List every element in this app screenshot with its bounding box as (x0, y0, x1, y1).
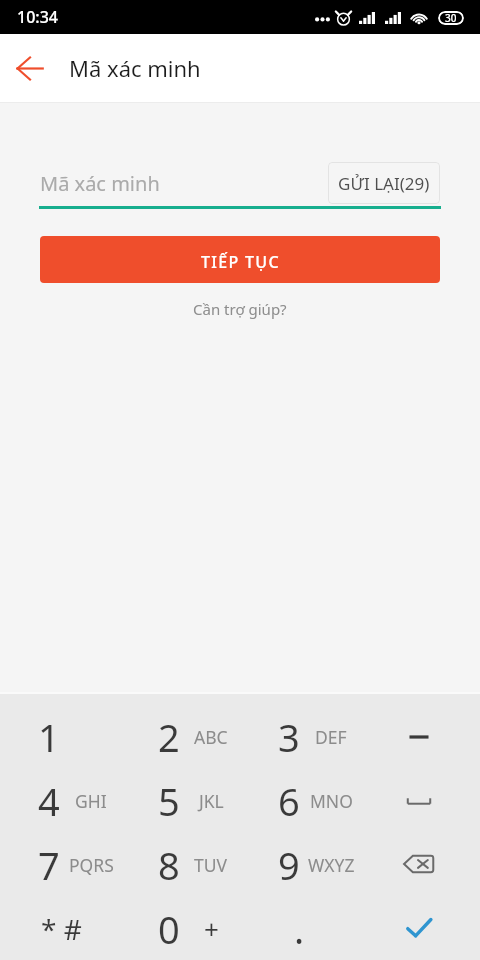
staticText: 3 (278, 711, 300, 763)
staticText: Mã xác minh (69, 53, 201, 83)
staticText: TIẾP TỤC (201, 251, 280, 273)
button[interactable]: 4 (0, 769, 120, 833)
staticText: JKL (199, 789, 224, 813)
staticText: . (294, 903, 305, 955)
staticText: ABC (194, 725, 228, 749)
button[interactable]: Cần trợ giúp? (183, 295, 297, 323)
other: Backspace (393, 839, 445, 891)
button[interactable]: Space (360, 769, 480, 833)
button[interactable]: 6 (240, 769, 360, 833)
staticText: 8 (158, 839, 180, 891)
staticText: 1 (38, 711, 60, 763)
staticText: 5 (158, 775, 180, 827)
staticText: 4 (38, 775, 60, 827)
button[interactable]: 0 (120, 897, 240, 960)
button[interactable]: * # (0, 897, 120, 960)
button[interactable]: 7 (0, 833, 120, 897)
button[interactable]: 1 (0, 705, 120, 769)
button[interactable]: 3 (240, 705, 360, 769)
staticText: MNO (310, 789, 353, 813)
button[interactable]: Minus (360, 705, 480, 769)
staticText: Mã xác minh (40, 170, 160, 197)
button[interactable]: . (240, 897, 360, 960)
button[interactable]: 2 (120, 705, 240, 769)
button[interactable]: GỬI LẠI(29) (328, 162, 440, 204)
staticText: 30 (445, 11, 457, 25)
button[interactable]: Done (360, 897, 480, 960)
other: Minus (393, 711, 445, 763)
button[interactable]: 9 (240, 833, 360, 897)
staticText: 6 (278, 775, 300, 827)
staticText: GỬI LẠI(29) (338, 172, 430, 195)
staticText: GHI (75, 789, 107, 813)
staticText: 7 (38, 839, 60, 891)
staticText: TUV (194, 853, 228, 877)
button[interactable]: 5 (120, 769, 240, 833)
button[interactable]: 8 (120, 833, 240, 897)
button[interactable]: TIẾP TỤC (40, 236, 440, 283)
staticText: 10:34 (17, 6, 58, 28)
staticText: + (204, 911, 219, 946)
staticText: PQRS (69, 853, 114, 877)
button[interactable]: Back (8, 46, 52, 90)
other: Done (393, 903, 445, 955)
staticText: WXYZ (308, 853, 355, 877)
staticText: * # (41, 910, 82, 948)
staticText: Cần trợ giúp? (193, 299, 287, 319)
button[interactable]: Backspace (360, 833, 480, 897)
staticText: 2 (158, 711, 180, 763)
staticText: 9 (278, 839, 300, 891)
staticText: 0 (158, 903, 180, 955)
other: Space (393, 775, 445, 827)
staticText: DEF (315, 725, 347, 749)
